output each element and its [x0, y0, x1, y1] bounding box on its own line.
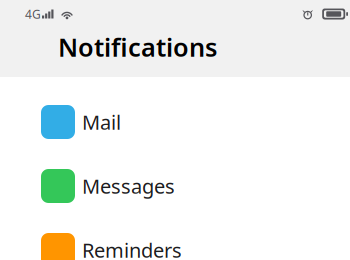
- button[interactable]: Mail: [0, 90, 350, 154]
- staticText: Messages: [82, 173, 175, 199]
- button[interactable]: Messages: [0, 154, 350, 218]
- staticText: 4G: [25, 6, 41, 22]
- staticText: Notifications: [58, 30, 217, 64]
- staticText: Mail: [82, 109, 121, 135]
- button[interactable]: Reminders: [0, 218, 350, 260]
- staticText: Reminders: [82, 237, 182, 260]
